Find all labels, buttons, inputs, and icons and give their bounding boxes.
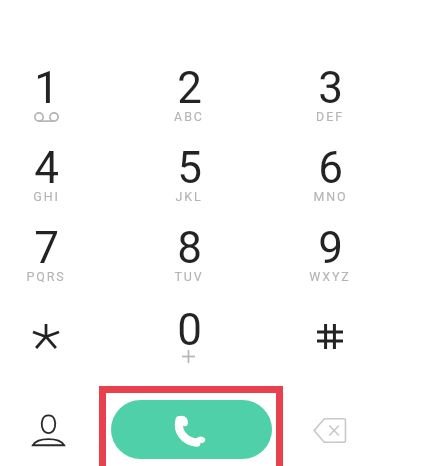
staticText: GHI bbox=[33, 189, 60, 204]
button[interactable] bbox=[274, 55, 386, 129]
staticText: DEF bbox=[316, 109, 344, 124]
staticText: 3 bbox=[318, 62, 343, 114]
button[interactable] bbox=[0, 295, 102, 369]
button[interactable]: Call bbox=[111, 400, 272, 459]
button[interactable] bbox=[133, 215, 245, 289]
staticText: JKL bbox=[175, 189, 203, 204]
staticText: 8 bbox=[177, 222, 202, 274]
staticText: TUV bbox=[174, 269, 204, 284]
button[interactable] bbox=[133, 55, 245, 129]
button[interactable] bbox=[0, 215, 102, 289]
button[interactable]: Backspace bbox=[300, 400, 360, 460]
staticText: 6 bbox=[318, 142, 343, 194]
staticText: 5 bbox=[177, 142, 202, 194]
staticText: ABC bbox=[174, 109, 204, 124]
button[interactable] bbox=[0, 55, 102, 129]
staticText: 1 bbox=[34, 62, 59, 114]
staticText: 9 bbox=[318, 222, 343, 274]
button[interactable]: Contacts bbox=[18, 400, 78, 460]
button[interactable] bbox=[133, 135, 245, 209]
staticText: MNO bbox=[313, 189, 348, 204]
staticText: 0 bbox=[177, 304, 202, 356]
staticText: WXYZ bbox=[309, 269, 351, 284]
button[interactable] bbox=[0, 135, 102, 209]
staticText: 7 bbox=[34, 222, 59, 274]
button[interactable] bbox=[274, 135, 386, 209]
staticText: 4 bbox=[34, 142, 59, 194]
button[interactable] bbox=[274, 215, 386, 289]
staticText: 2 bbox=[177, 62, 202, 114]
button[interactable] bbox=[274, 295, 386, 369]
staticText: PQRS bbox=[26, 269, 66, 284]
button[interactable] bbox=[133, 295, 245, 369]
